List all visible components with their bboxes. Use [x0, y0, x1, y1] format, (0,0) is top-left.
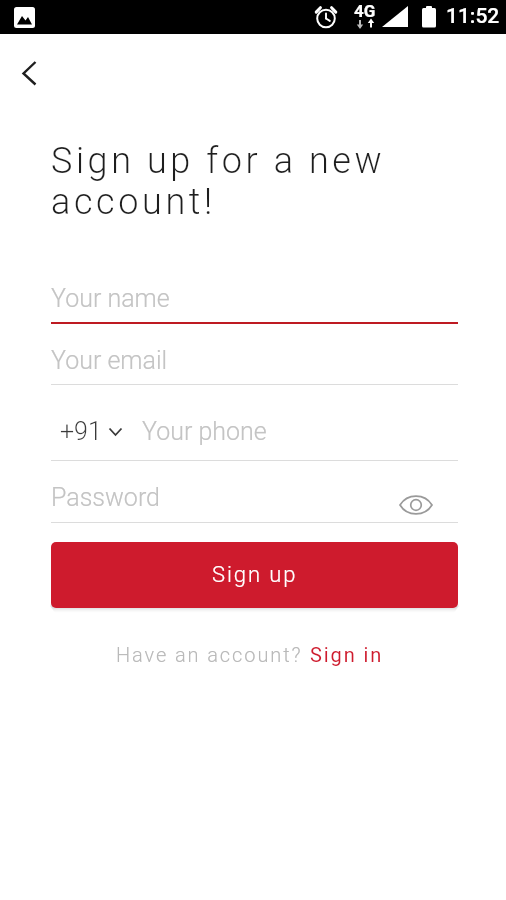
staticText: Your name — [51, 284, 170, 313]
button[interactable]: Your name — [51, 279, 458, 317]
staticText: Sign up for a new account! — [51, 140, 386, 223]
button[interactable]: Show password — [394, 483, 438, 527]
button[interactable]: +91 — [60, 412, 123, 450]
staticText: 4G — [354, 1, 376, 21]
button[interactable]: Your email — [51, 341, 458, 379]
button[interactable]: Sign in — [310, 643, 384, 666]
button[interactable]: Back — [2, 47, 56, 101]
button[interactable]: Your phone — [142, 412, 458, 450]
staticText: 11:52 — [446, 4, 500, 29]
staticText: Your phone — [142, 417, 267, 446]
staticText: +91 — [60, 417, 102, 446]
staticText: Your email — [51, 346, 168, 375]
button[interactable]: Sign up — [51, 542, 458, 608]
staticText: Have an account? — [116, 643, 310, 666]
button[interactable]: Password — [51, 478, 458, 516]
staticText: Sign in — [310, 643, 384, 666]
staticText: Sign up — [212, 562, 298, 588]
staticText: Password — [51, 483, 160, 512]
